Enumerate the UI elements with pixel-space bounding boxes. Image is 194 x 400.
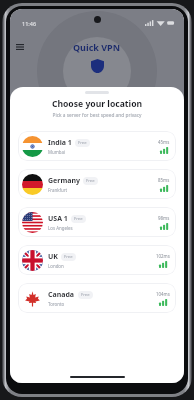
staticText: Free <box>86 178 95 184</box>
staticText: 11:46 <box>22 20 37 27</box>
staticText: London <box>48 263 64 269</box>
button[interactable]: Canada <box>18 283 176 313</box>
staticText: 45ms <box>158 139 170 145</box>
staticText: India 1 <box>48 138 72 148</box>
button[interactable]: UK <box>18 245 176 275</box>
staticText: Los Angeles <box>48 225 73 231</box>
staticText: Pick a server for best speed and privacy <box>10 112 184 119</box>
staticText: Germany <box>48 176 80 186</box>
staticText: Quick VPN <box>73 41 120 53</box>
staticText: USA 1 <box>48 214 68 224</box>
staticText: Free <box>64 254 73 260</box>
staticText: 104ms <box>156 291 170 297</box>
button[interactable]: USA 1 <box>18 207 176 237</box>
button[interactable]: Germany <box>18 169 176 199</box>
staticText: 85ms <box>158 177 170 183</box>
staticText: Choose your location <box>10 98 184 110</box>
staticText: UK <box>48 252 58 262</box>
staticText: Free <box>74 216 83 222</box>
staticText: Mumbai <box>48 149 66 155</box>
button[interactable]: India 1 <box>18 131 176 161</box>
staticText: Canada <box>48 290 75 300</box>
button[interactable]: Open navigation menu <box>12 39 28 55</box>
staticText: Free <box>81 292 90 298</box>
staticText: Toronto <box>48 301 65 307</box>
staticText: 98ms <box>158 215 170 221</box>
staticText: Free <box>78 140 87 146</box>
staticText: Frankfurt <box>48 187 68 193</box>
staticText: 102ms <box>156 253 170 259</box>
